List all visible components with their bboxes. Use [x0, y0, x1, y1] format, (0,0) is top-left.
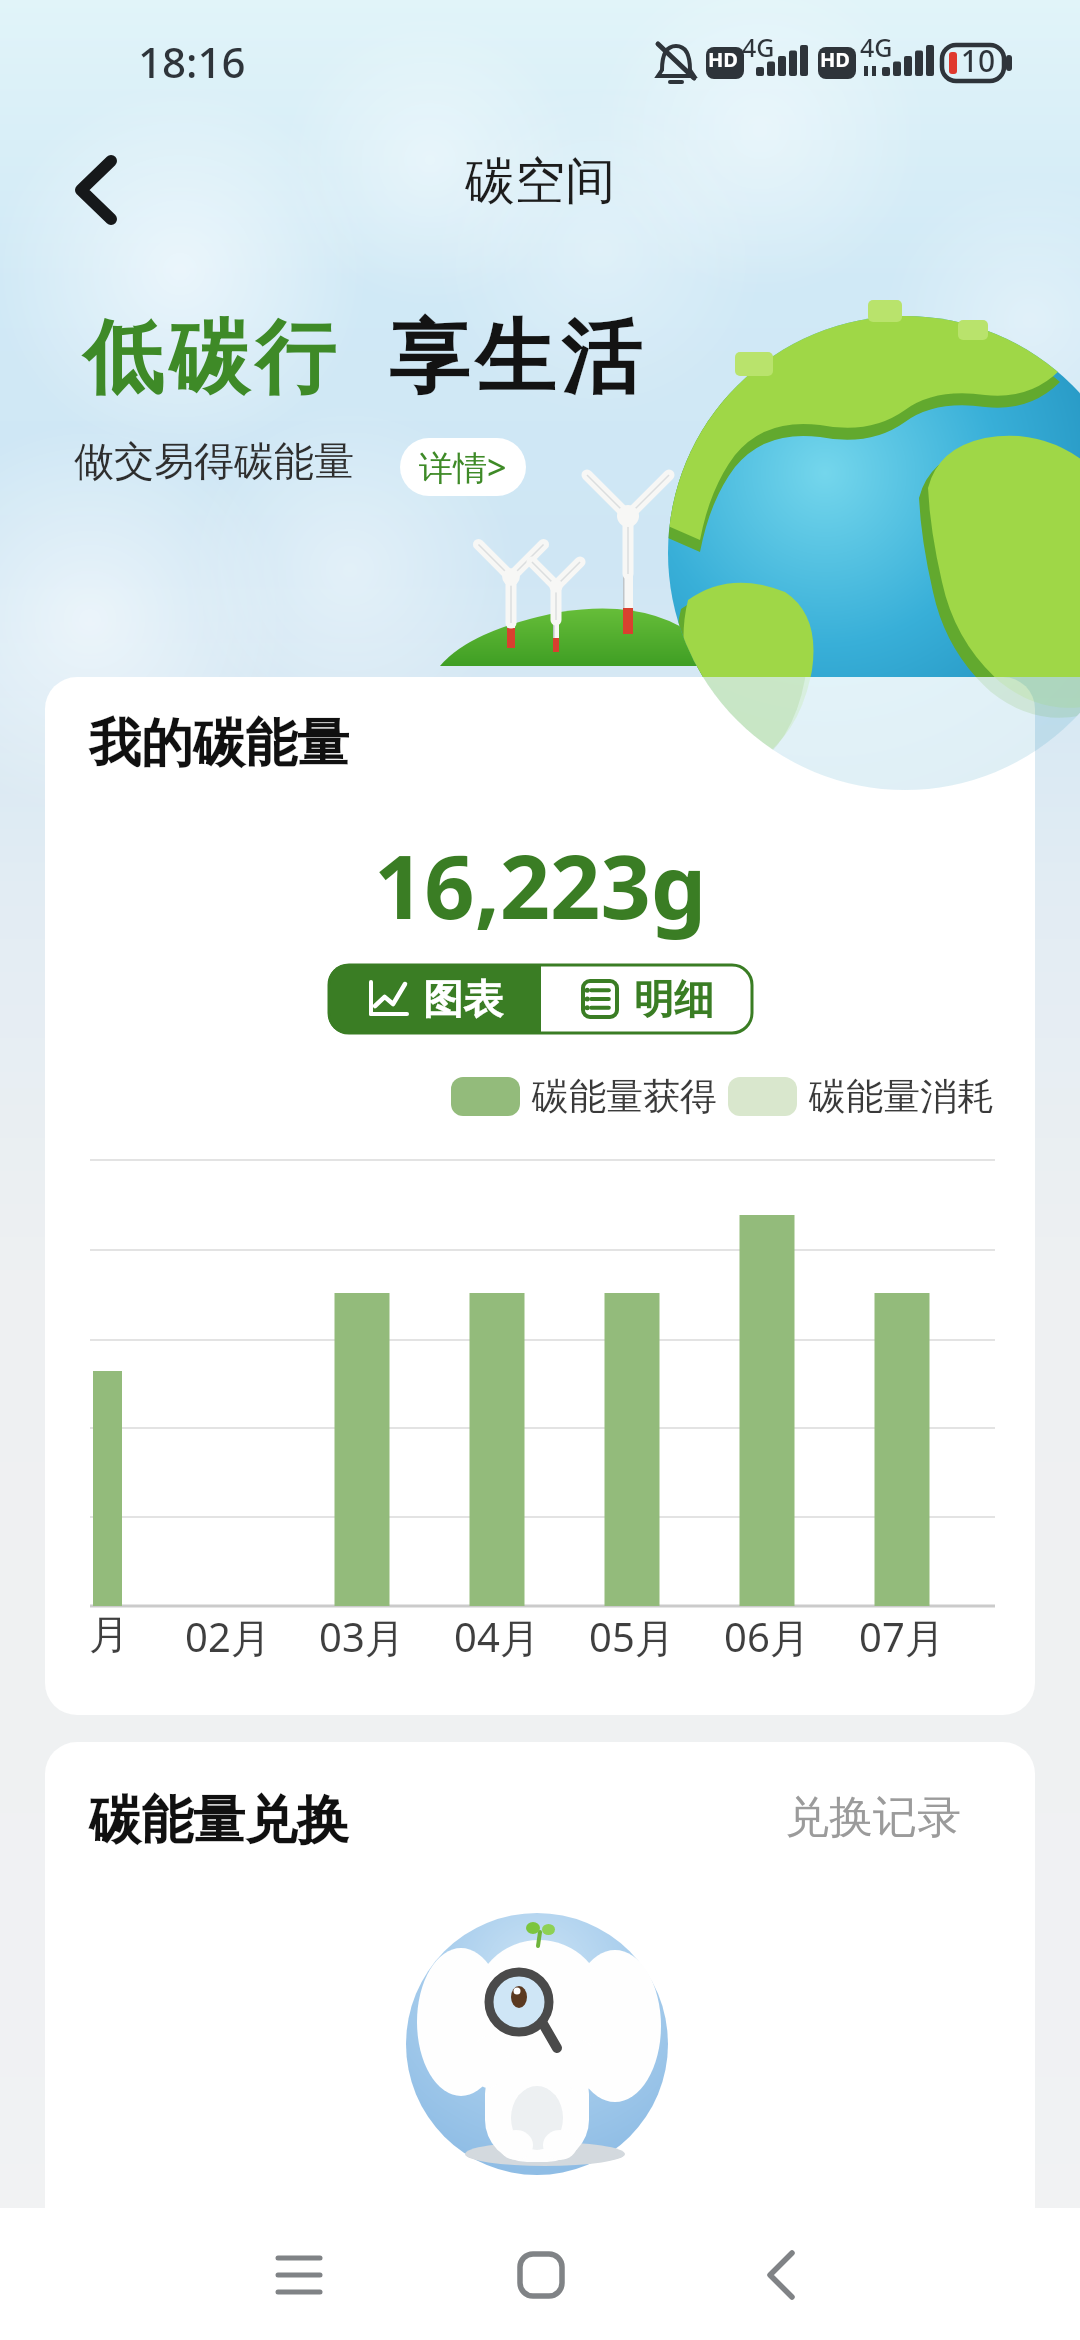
staticText: 07月 — [859, 1609, 945, 1664]
staticText: 月 — [89, 1609, 129, 1659]
button[interactable]: 兑换记录 — [785, 1790, 985, 1850]
staticText: 兑换记录 — [785, 1790, 961, 1845]
staticText: 05月 — [589, 1609, 675, 1664]
staticText: 详情> — [419, 444, 507, 490]
button[interactable] — [50, 145, 140, 235]
button[interactable] — [360, 2208, 720, 2340]
staticText: 03月 — [319, 1609, 405, 1664]
button[interactable] — [720, 2208, 1080, 2340]
staticText: 16,223g — [374, 825, 707, 945]
staticText: 04月 — [454, 1609, 540, 1664]
button[interactable]: 详情> — [400, 438, 526, 496]
staticText: 碳空间 — [465, 150, 615, 213]
staticText: 享生活 — [386, 308, 644, 409]
staticText: 18:16 — [138, 33, 246, 90]
button[interactable]: 明细 — [541, 964, 753, 1034]
staticText: 碳能量兑换 — [89, 1788, 349, 1854]
staticText: 我的碳能量 — [89, 711, 349, 777]
staticText: 明细 — [634, 974, 714, 1024]
button[interactable] — [0, 2208, 360, 2340]
staticText: 4G — [742, 30, 775, 64]
staticText: HD — [820, 46, 850, 73]
staticText: 图表 — [423, 974, 503, 1024]
staticText: 低碳行 — [80, 308, 338, 409]
staticText: 碳能量获得 — [532, 1073, 717, 1120]
staticText: 06月 — [724, 1609, 810, 1664]
staticText: 做交易得碳能量 — [74, 436, 354, 486]
staticText: 碳能量消耗 — [809, 1073, 994, 1120]
button[interactable]: 图表 — [328, 964, 541, 1034]
staticText: 4G — [860, 30, 893, 64]
staticText: 02月 — [185, 1609, 271, 1664]
staticText: HD — [708, 46, 738, 73]
staticText: 10 — [956, 40, 1000, 81]
